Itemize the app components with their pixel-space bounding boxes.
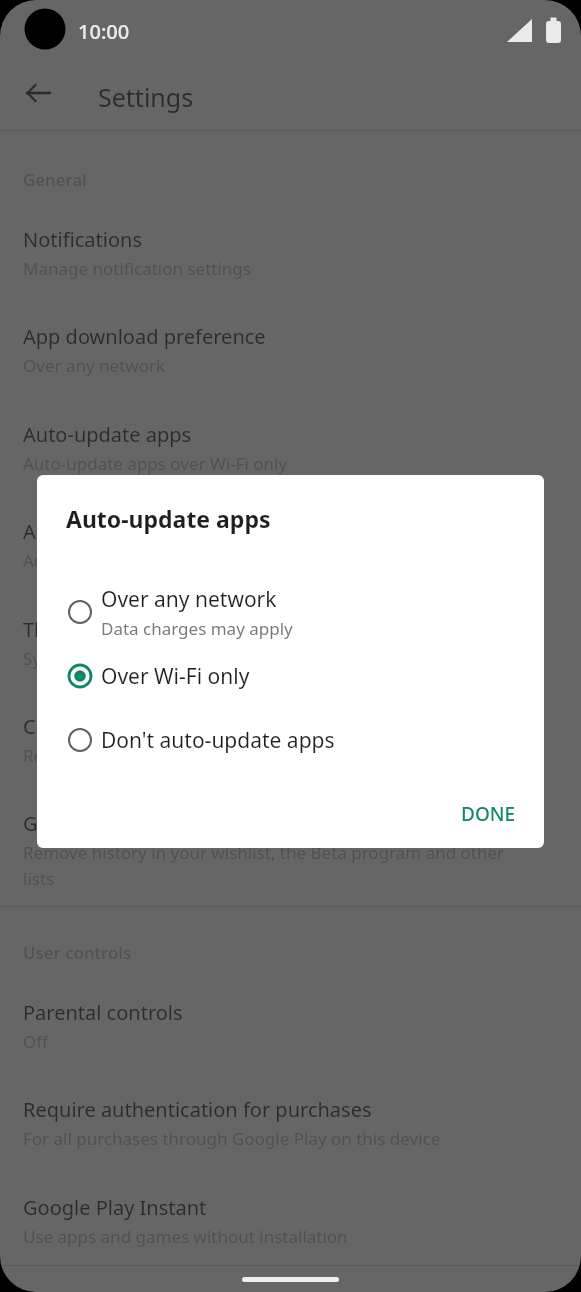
button[interactable]: Google Play Instant	[0, 1192, 581, 1258]
staticText: Theme	[23, 616, 88, 643]
staticText: General	[23, 168, 87, 191]
staticText: System default	[23, 647, 142, 670]
staticText: For all purchases through Google Play on…	[23, 1127, 441, 1150]
staticText: Auto-play videos over Wi-Fi only	[23, 549, 277, 572]
staticText: Use apps and games without installation	[23, 1225, 348, 1248]
staticText: Remove history in your wishlist, the Bet…	[23, 841, 505, 890]
staticText: 10:00	[78, 18, 130, 45]
button[interactable]: Auto-play videos	[0, 516, 581, 582]
staticText: Don't auto-update apps	[101, 726, 335, 755]
button[interactable]: DONE	[449, 793, 528, 835]
button[interactable]: Google Play purchases	[0, 808, 581, 900]
staticText: Auto-play videos	[23, 518, 179, 545]
staticText: Clear local search history	[23, 713, 258, 740]
staticText: Require authentication for purchases	[23, 1096, 372, 1123]
button[interactable]: Back	[14, 69, 62, 117]
staticText: Parental controls	[23, 999, 183, 1026]
button[interactable]: Theme	[0, 614, 581, 680]
staticText: Remove searches from this device	[23, 744, 294, 767]
staticText: Manage notification settings	[23, 257, 251, 280]
staticText: Over any network	[101, 585, 277, 614]
button[interactable]: Auto-update apps	[0, 419, 581, 485]
staticText: Google Play purchases	[23, 810, 236, 837]
button[interactable]: Require authentication for purchases	[0, 1094, 581, 1160]
staticText: Settings	[98, 80, 194, 114]
staticText: Off	[23, 1030, 48, 1053]
staticText: Over Wi-Fi only	[101, 662, 250, 691]
staticText: Auto-update apps	[66, 503, 271, 534]
button[interactable]: Notifications	[0, 224, 581, 290]
staticText: Data charges may apply	[101, 617, 293, 640]
button[interactable]: Clear local search history	[0, 711, 581, 777]
staticText: Auto-update apps over Wi-Fi only	[23, 452, 288, 475]
button[interactable]: Don't auto-update apps	[37, 708, 544, 772]
staticText: Notifications	[23, 226, 142, 253]
staticText: User controls	[23, 941, 132, 964]
staticText: Auto-update apps	[23, 421, 192, 448]
staticText: DONE	[461, 801, 516, 827]
button[interactable]: Over any network	[37, 580, 544, 644]
button[interactable]: App download preference	[0, 321, 581, 387]
staticText: App download preference	[23, 323, 266, 350]
staticText: Google Play Instant	[23, 1194, 207, 1221]
staticText: Over any network	[23, 354, 166, 377]
button[interactable]: Parental controls	[0, 997, 581, 1063]
button[interactable]: Over Wi-Fi only	[37, 644, 544, 708]
